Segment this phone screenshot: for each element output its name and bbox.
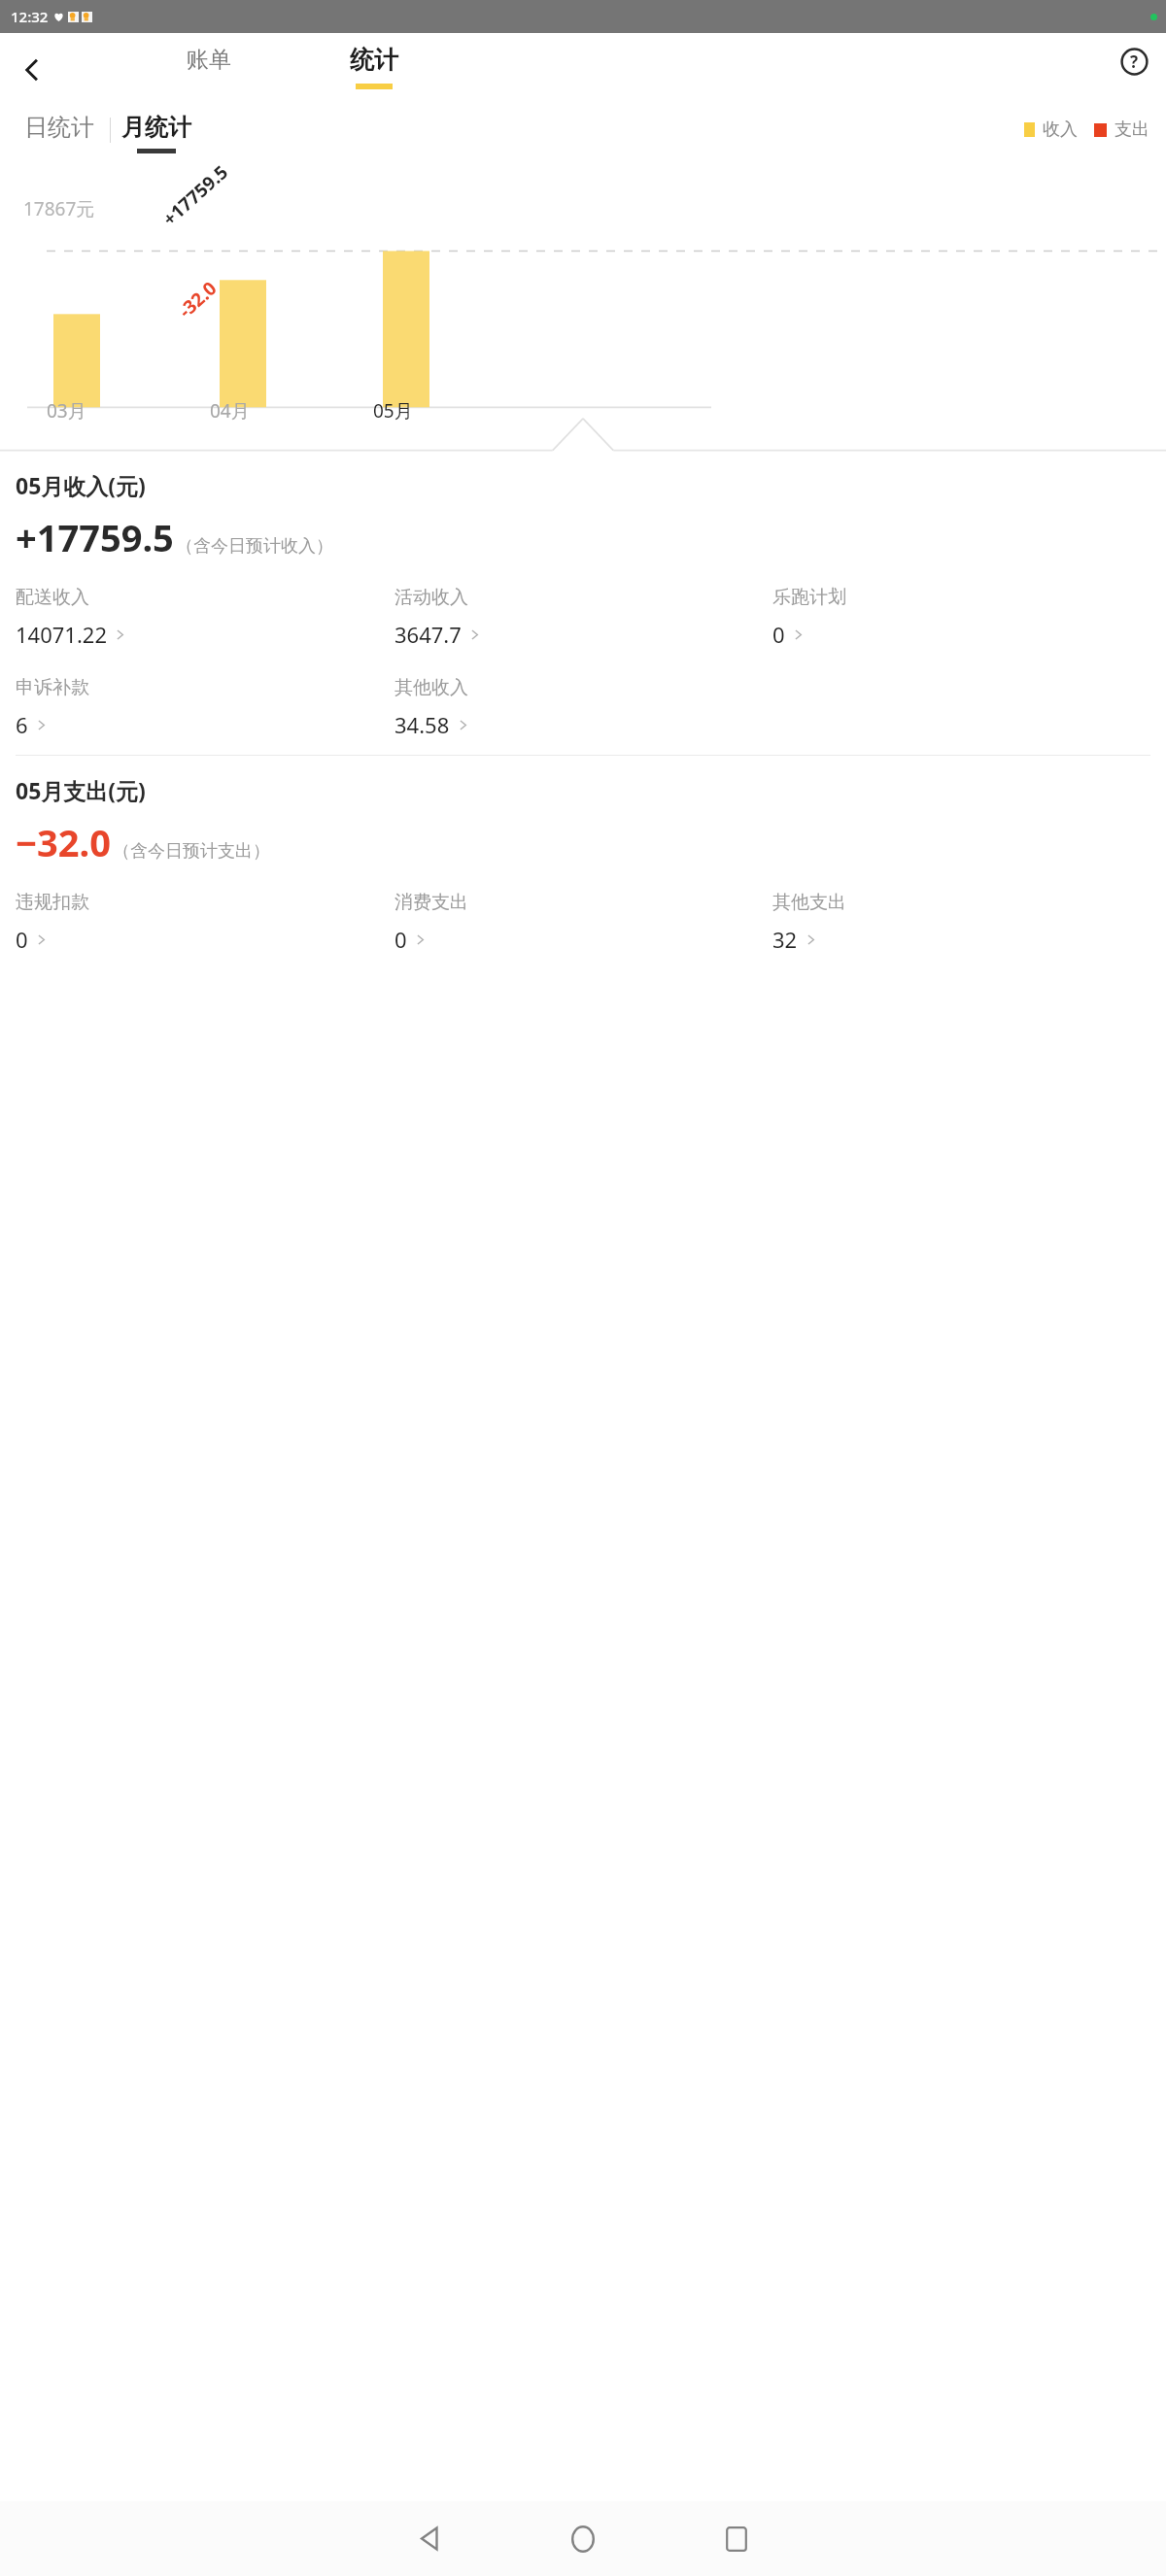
staticText: +17759.5: [157, 159, 233, 231]
staticText: 03月: [47, 398, 86, 424]
staticText: 04月: [210, 398, 250, 424]
staticText: 12:32: [11, 7, 49, 26]
button[interactable]: 账单: [187, 46, 231, 74]
staticText: 14071.22: [16, 620, 107, 649]
button[interactable]: 月统计: [121, 113, 191, 153]
staticText: （含今日预计收入）: [176, 535, 333, 558]
button[interactable]: Help: [1112, 39, 1156, 84]
staticText: 0: [772, 620, 785, 649]
staticText: 月统计: [121, 113, 191, 142]
button[interactable]: Back: [383, 2501, 476, 2576]
staticText: 乐跑计划: [772, 586, 846, 609]
staticText: 消费支出: [394, 891, 468, 914]
staticText: 违规扣款: [16, 891, 89, 914]
staticText: 活动收入: [394, 586, 468, 609]
staticText: 34.58: [394, 710, 450, 739]
staticText: 05月收入(元): [16, 470, 146, 500]
staticText: 支出: [1115, 119, 1149, 141]
staticText: ?: [1130, 51, 1139, 73]
staticText: 0: [16, 925, 28, 954]
button[interactable]: 申诉补款: [16, 674, 394, 741]
button[interactable]: 消费支出: [394, 889, 772, 956]
staticText: −32.0: [16, 817, 111, 867]
staticText: （含今日预计支出）: [113, 840, 270, 863]
button[interactable]: Back: [10, 48, 54, 92]
staticText: 6: [16, 710, 28, 739]
staticText: 05月支出(元): [16, 775, 146, 805]
button[interactable]: 违规扣款: [16, 889, 394, 956]
staticText: 17867元: [23, 196, 95, 221]
button[interactable]: 乐跑计划: [772, 584, 1150, 651]
staticText: 3647.7: [394, 620, 462, 649]
button[interactable]: Home: [536, 2501, 630, 2576]
staticText: 05月: [373, 398, 413, 424]
button[interactable]: 统计: [350, 45, 398, 89]
staticText: 申诉补款: [16, 676, 89, 699]
staticText: -32.0: [173, 275, 222, 323]
button[interactable]: 日统计: [19, 113, 99, 142]
staticText: 统计: [350, 45, 398, 75]
button[interactable]: 活动收入: [394, 584, 772, 651]
staticText: 其他收入: [394, 676, 468, 699]
staticText: 其他支出: [772, 891, 846, 914]
button[interactable]: Recents: [690, 2501, 783, 2576]
staticText: +17759.5: [16, 512, 174, 562]
button[interactable]: 配送收入: [16, 584, 394, 651]
button[interactable]: 其他支出: [772, 889, 1150, 956]
staticText: 账单: [187, 46, 231, 74]
button[interactable]: 其他收入: [394, 674, 772, 741]
staticText: 收入: [1043, 119, 1078, 141]
staticText: 0: [394, 925, 407, 954]
staticText: 32: [772, 925, 798, 954]
staticText: 配送收入: [16, 586, 89, 609]
staticText: 日统计: [24, 113, 94, 142]
